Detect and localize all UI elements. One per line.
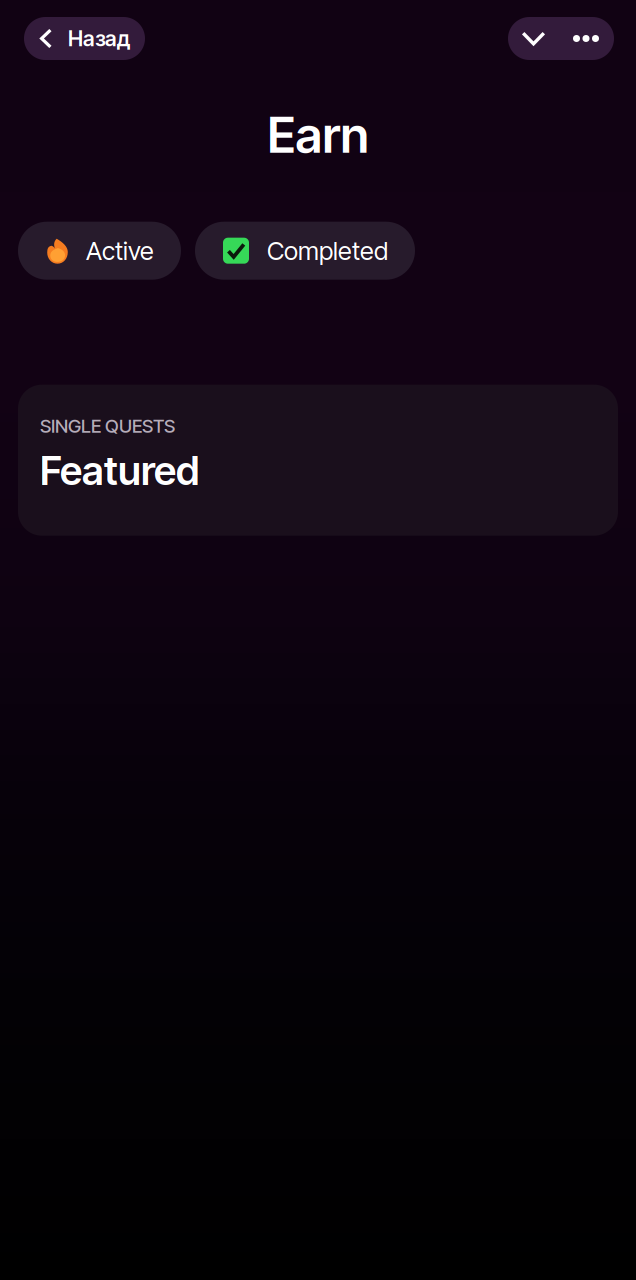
staticText: Назад bbox=[68, 26, 130, 51]
staticText: SINGLE QUESTS bbox=[40, 415, 175, 437]
button[interactable]: Назад bbox=[24, 17, 145, 60]
button[interactable]: More options bbox=[558, 17, 613, 60]
staticText: Earn bbox=[267, 105, 368, 165]
button[interactable]: Completed bbox=[195, 222, 415, 280]
button[interactable]: Active bbox=[18, 222, 181, 280]
staticText: Active bbox=[86, 235, 154, 266]
staticText: Completed bbox=[267, 235, 388, 266]
button[interactable]: SINGLE QUESTS bbox=[18, 385, 618, 536]
button[interactable]: Collapse bbox=[508, 17, 558, 60]
staticText: Featured bbox=[40, 446, 199, 495]
